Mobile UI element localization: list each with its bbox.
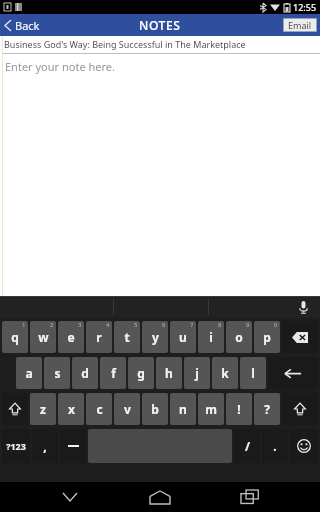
- button[interactable]: x: [58, 393, 84, 425]
- staticText: h: [165, 365, 173, 381]
- button[interactable]: Backspace: [282, 321, 318, 353]
- button[interactable]: Comma: [32, 429, 58, 463]
- staticText: c: [96, 401, 103, 417]
- button[interactable]: Voice input: [295, 299, 311, 315]
- staticText: Back: [15, 18, 40, 33]
- button[interactable]: y: [142, 321, 168, 353]
- staticText: 9: [246, 321, 250, 329]
- button[interactable]: f: [100, 357, 126, 389]
- staticText: x: [68, 401, 75, 417]
- button[interactable]: Emoji: [290, 429, 318, 463]
- staticText: !: [237, 401, 241, 417]
- staticText: Business God's Way: Being Successful in …: [4, 38, 246, 50]
- button[interactable]: o: [226, 321, 252, 353]
- staticText: 12:55: [293, 1, 317, 13]
- staticText: 0: [274, 321, 278, 329]
- staticText: 2: [50, 321, 54, 329]
- button[interactable]: v: [114, 393, 140, 425]
- button[interactable]: m: [198, 393, 224, 425]
- staticText: r: [96, 329, 102, 345]
- button[interactable]: ?123: [2, 429, 30, 463]
- staticText: a: [25, 365, 33, 381]
- button[interactable]: !: [226, 393, 252, 425]
- button[interactable]: p: [254, 321, 280, 353]
- button[interactable]: ?: [254, 393, 280, 425]
- button[interactable]: r: [86, 321, 112, 353]
- button[interactable]: g: [128, 357, 154, 389]
- staticText: o: [235, 329, 243, 345]
- staticText: p: [263, 329, 271, 345]
- staticText: 5: [134, 321, 138, 329]
- button[interactable]: h: [156, 357, 182, 389]
- staticText: ?: [264, 401, 270, 417]
- staticText: s: [54, 365, 61, 381]
- button[interactable]: n: [170, 393, 196, 425]
- staticText: .: [273, 438, 277, 454]
- button[interactable]: Recent apps: [218, 482, 282, 512]
- staticText: k: [221, 365, 229, 381]
- button[interactable]: b: [142, 393, 168, 425]
- button[interactable]: Back: [38, 482, 102, 512]
- staticText: 6: [162, 321, 166, 329]
- button[interactable]: Shift: [282, 393, 318, 425]
- button[interactable]: l: [240, 357, 266, 389]
- staticText: v: [124, 401, 131, 417]
- staticText: y: [152, 329, 159, 345]
- button[interactable]: Enter: [268, 357, 318, 389]
- staticText: 7: [190, 321, 194, 329]
- staticText: 1: [22, 321, 26, 329]
- button[interactable]: k: [212, 357, 238, 389]
- staticText: 8: [218, 321, 222, 329]
- staticText: l: [251, 365, 255, 381]
- button[interactable]: Slash: [234, 429, 260, 463]
- staticText: e: [67, 329, 75, 345]
- staticText: m: [205, 401, 217, 417]
- staticText: ,: [43, 438, 47, 454]
- staticText: z: [40, 401, 46, 417]
- button[interactable]: e: [58, 321, 84, 353]
- staticText: /: [245, 438, 250, 454]
- staticText: j: [195, 365, 199, 381]
- button[interactable]: Email: [283, 18, 317, 32]
- staticText: u: [179, 329, 187, 345]
- staticText: t: [124, 329, 130, 345]
- staticText: 3: [78, 321, 82, 329]
- button[interactable]: s: [44, 357, 70, 389]
- staticText: ?123: [6, 440, 26, 452]
- staticText: q: [11, 329, 19, 345]
- button[interactable]: d: [72, 357, 98, 389]
- staticText: i: [209, 329, 213, 345]
- staticText: f: [111, 365, 116, 381]
- staticText: 4: [106, 321, 110, 329]
- staticText: Email: [288, 19, 312, 31]
- button[interactable]: u: [170, 321, 196, 353]
- button[interactable]: w: [30, 321, 56, 353]
- staticText: g: [137, 365, 145, 381]
- button[interactable]: Shift: [2, 393, 28, 425]
- button[interactable]: Back: [0, 14, 48, 36]
- button[interactable]: Dash: [60, 429, 86, 463]
- button[interactable]: t: [114, 321, 140, 353]
- button[interactable]: a: [16, 357, 42, 389]
- button[interactable]: q: [2, 321, 28, 353]
- staticText: NOTES: [139, 17, 181, 33]
- staticText: n: [179, 401, 187, 417]
- button[interactable]: Home: [128, 482, 192, 512]
- button[interactable]: z: [30, 393, 56, 425]
- button[interactable]: c: [86, 393, 112, 425]
- button[interactable]: i: [198, 321, 224, 353]
- button[interactable]: Period: [262, 429, 288, 463]
- button[interactable]: j: [184, 357, 210, 389]
- staticText: d: [81, 365, 89, 381]
- button[interactable]: Enter your note here.: [5, 59, 115, 74]
- staticText: w: [38, 329, 49, 345]
- staticText: b: [151, 401, 159, 417]
